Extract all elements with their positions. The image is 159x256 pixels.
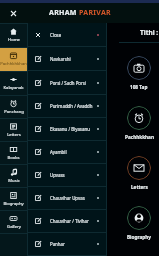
staticText: Chauvihar Upvas [50,195,85,201]
button[interactable]: Biography [0,188,27,210]
staticText: ARHAM [49,8,79,18]
staticText: Letters [131,184,148,190]
button[interactable]: Porsi / Sadh Porsi [28,71,106,94]
staticText: Home [8,37,20,43]
button[interactable]: Navkarshi [28,47,106,70]
staticText: PARIVAR [79,8,111,18]
staticText: Panchang [4,109,24,115]
button[interactable]: Pachhkkhan [119,93,159,143]
staticText: Books [7,155,20,161]
staticText: 108 Tap [130,84,148,90]
button[interactable]: Home [0,24,27,47]
staticText: Ekasanu / Biyasanu [50,126,90,132]
staticText: Music [8,178,20,184]
button[interactable]: Gallery [0,211,27,233]
button[interactable]: Close [6,6,20,20]
staticText: Panhar [50,241,65,247]
staticText: Chauvihar / Tivihar [50,218,89,224]
staticText: Letters [7,132,21,138]
button[interactable]: Kalayanak [0,72,27,95]
staticText: Close [50,32,62,38]
button[interactable]: Ayambil [28,141,106,163]
button[interactable]: Upvass [28,164,106,186]
button[interactable]: Panchang [0,96,27,118]
button[interactable]: Close [28,23,106,46]
button[interactable]: Biography [119,193,159,243]
staticText: Porsi / Sadh Porsi [50,80,87,86]
staticText: Kalayanak [3,85,24,91]
button[interactable]: Purimaddh / Avaddh [28,95,106,117]
button[interactable]: Letters [119,143,159,193]
staticText: Gallery [7,224,21,230]
button[interactable]: 108 Tap [119,43,159,93]
button[interactable]: Music [0,165,27,187]
staticText: Purimaddh / Avaddh [50,103,93,109]
button[interactable]: Chauvihar / Tivihar [28,210,106,232]
staticText: Biography [3,201,24,207]
staticText: Pachhkhkhan [0,61,27,67]
staticText: Tithi : Sud Bij [140,28,159,37]
staticText: Biography [127,234,151,240]
staticText: Pachhkkhan [125,134,154,140]
button[interactable]: Panhar [28,233,106,255]
staticText: Upvass [50,172,65,178]
button[interactable]: Chauvihar Upvas [28,187,106,209]
button[interactable]: Ekasanu / Biyasanu [28,118,106,140]
staticText: Ayambil [50,149,67,155]
button[interactable]: Letters [0,119,27,141]
button[interactable]: Books [0,142,27,164]
staticText: Navkarshi [50,56,71,62]
button[interactable]: Pachhkhkhan [0,48,27,71]
